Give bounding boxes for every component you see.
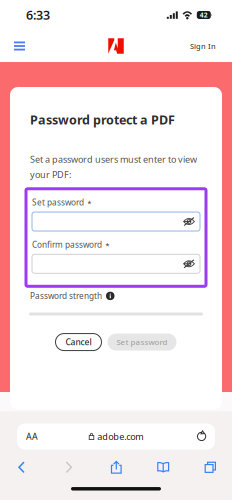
staticText: Set password (116, 337, 167, 347)
button[interactable]: Show Confirm password (32, 254, 200, 273)
button[interactable]: Share (101, 456, 132, 479)
staticText: Password strength (30, 290, 102, 302)
staticText: Cancel (65, 336, 91, 348)
staticText: Set password (32, 197, 84, 208)
staticText: Confirm password (32, 239, 102, 250)
staticText: ★ (105, 242, 110, 248)
button[interactable]: Forward (53, 455, 84, 479)
button[interactable]: Menu (0, 32, 35, 59)
button[interactable]: Address (81, 424, 151, 449)
button[interactable]: Reload (189, 426, 215, 446)
staticText: adobe.com (97, 430, 143, 443)
button[interactable]: Set password (107, 333, 176, 350)
staticText: your PDF: (30, 168, 71, 181)
staticText: Password protect a PDF (30, 111, 175, 128)
button[interactable]: Tabs (195, 457, 226, 478)
button[interactable]: Sign In (180, 31, 232, 61)
staticText: AA (26, 430, 38, 442)
button[interactable]: Back (6, 455, 37, 479)
staticText: 6:33 (26, 6, 50, 24)
staticText: Sign In (190, 41, 216, 51)
button[interactable]: Cancel (55, 333, 101, 350)
staticText: ★ (87, 199, 92, 205)
staticText: 42 (200, 11, 208, 19)
button[interactable]: Show Set password (32, 212, 200, 231)
button[interactable]: Bookmarks (148, 456, 178, 479)
staticText: Set a password users must enter to view (30, 153, 197, 165)
button[interactable]: Page settings (17, 424, 47, 448)
